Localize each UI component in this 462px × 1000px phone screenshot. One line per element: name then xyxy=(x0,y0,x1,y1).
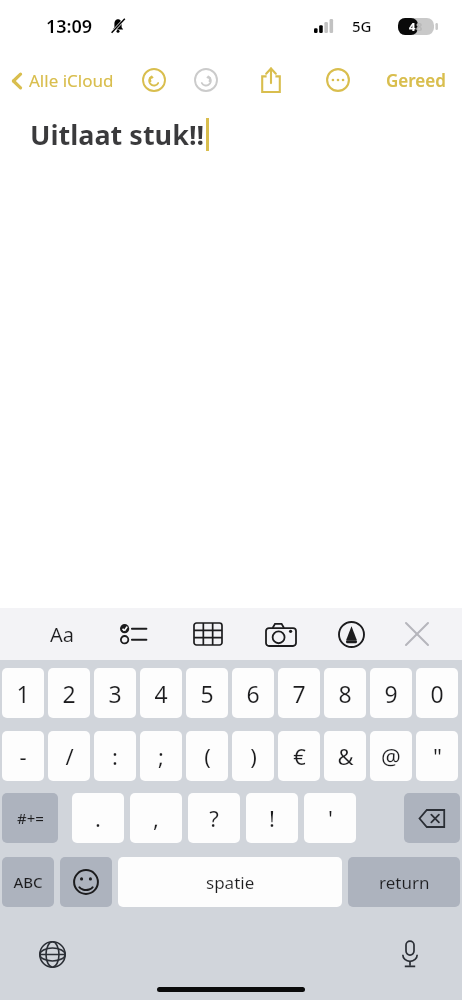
staticText: 7 xyxy=(292,678,306,709)
button[interactable]: 1 xyxy=(2,668,44,718)
staticText: 3 xyxy=(108,678,122,709)
staticText: 2 xyxy=(62,678,76,709)
staticText: / xyxy=(65,741,74,771)
staticText: ! xyxy=(269,803,275,833)
button[interactable]: Checklist xyxy=(109,610,157,658)
staticText: . xyxy=(95,803,101,833)
button[interactable]: 2 xyxy=(48,668,90,718)
button[interactable]: Redo xyxy=(190,64,222,96)
staticText: 13:09 xyxy=(46,14,93,39)
staticText: " xyxy=(433,741,442,771)
button[interactable]: Text format xyxy=(38,610,86,658)
staticText: , xyxy=(153,803,159,833)
staticText: 1 xyxy=(16,678,30,709)
button[interactable]: 4 xyxy=(140,668,182,718)
staticText: ? xyxy=(209,803,219,833)
staticText: 8 xyxy=(338,678,352,709)
staticText: - xyxy=(19,741,27,771)
staticText: Gereed xyxy=(386,69,446,92)
button[interactable]: ( xyxy=(186,731,228,781)
staticText: 8 xyxy=(416,19,423,34)
staticText: @ xyxy=(381,741,401,771)
button[interactable]: spatie xyxy=(118,857,342,907)
staticText: : xyxy=(112,741,118,771)
staticText: & xyxy=(337,741,354,771)
staticText: ABC xyxy=(13,872,43,892)
button[interactable]: Share xyxy=(256,63,286,97)
staticText: ; xyxy=(158,741,164,771)
button[interactable]: #+= xyxy=(2,793,58,843)
staticText: spatie xyxy=(206,871,255,894)
button[interactable]: 5 xyxy=(186,668,228,718)
staticText: € xyxy=(293,741,306,771)
button[interactable]: Undo xyxy=(138,64,170,96)
button[interactable]: Change keyboard xyxy=(30,932,74,976)
button[interactable]: / xyxy=(48,731,90,781)
button[interactable]: @ xyxy=(370,731,412,781)
button[interactable]: ABC xyxy=(2,857,54,907)
button[interactable]: Backspace xyxy=(404,793,460,843)
button[interactable]: : xyxy=(94,731,136,781)
button[interactable]: € xyxy=(278,731,320,781)
button[interactable]: Markup xyxy=(327,610,375,658)
button[interactable]: , xyxy=(130,793,182,843)
button[interactable]: Emoji xyxy=(60,857,112,907)
button[interactable]: Alle iCloud xyxy=(6,63,118,98)
staticText: Aa xyxy=(50,621,74,648)
button[interactable]: 7 xyxy=(278,668,320,718)
button[interactable]: 8 xyxy=(324,668,366,718)
button[interactable]: & xyxy=(324,731,366,781)
button[interactable]: 9 xyxy=(370,668,412,718)
button[interactable]: " xyxy=(416,731,458,781)
button[interactable]: ? xyxy=(188,793,240,843)
staticText: 0 xyxy=(430,678,444,709)
staticText: 9 xyxy=(384,678,398,709)
button[interactable]: ' xyxy=(304,793,356,843)
button[interactable]: More options xyxy=(322,64,354,96)
button[interactable]: ) xyxy=(232,731,274,781)
staticText: Alle iCloud xyxy=(29,69,114,92)
button[interactable]: ; xyxy=(140,731,182,781)
button[interactable]: Dictate xyxy=(388,932,432,976)
staticText: 5G xyxy=(352,16,372,36)
button[interactable]: Gereed xyxy=(382,63,450,98)
button[interactable]: ! xyxy=(246,793,298,843)
staticText: 6 xyxy=(246,678,260,709)
button[interactable]: - xyxy=(2,731,44,781)
staticText: return xyxy=(379,871,430,894)
staticText: 4 xyxy=(409,19,416,34)
button[interactable]: 6 xyxy=(232,668,274,718)
staticText: 5 xyxy=(200,678,214,709)
button[interactable]: 0 xyxy=(416,668,458,718)
button[interactable]: Hide keyboard xyxy=(393,610,441,658)
button[interactable]: return xyxy=(348,857,460,907)
button[interactable]: Table xyxy=(184,610,232,658)
button[interactable]: 3 xyxy=(94,668,136,718)
button[interactable]: Camera xyxy=(257,610,305,658)
staticText: 4 xyxy=(154,678,168,709)
button[interactable]: . xyxy=(72,793,124,843)
staticText: Uitlaat stuk!! xyxy=(30,116,205,153)
staticText: ( xyxy=(204,741,211,771)
staticText: #+= xyxy=(17,808,44,828)
staticText: ' xyxy=(328,803,333,833)
staticText: ) xyxy=(250,741,257,771)
